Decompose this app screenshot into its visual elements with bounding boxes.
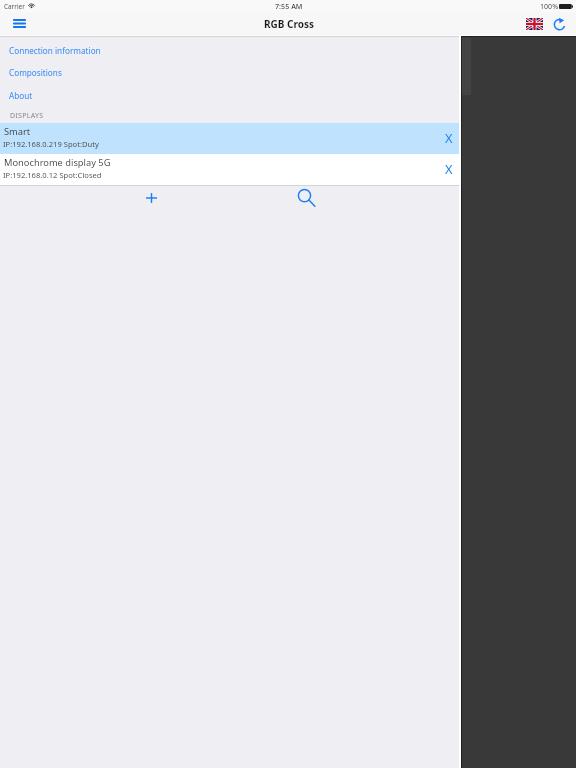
staticText: Smart	[4, 125, 31, 138]
staticText: Compositions	[9, 67, 62, 78]
button[interactable]: Connection information	[0, 39, 459, 61]
staticText: Monochrome display 5G	[4, 156, 111, 169]
button[interactable]: Smart	[0, 123, 459, 154]
staticText: X	[445, 160, 453, 177]
button[interactable]: Remove	[440, 159, 458, 177]
staticText: DISPLAYS	[10, 111, 44, 121]
staticText: About	[9, 90, 33, 101]
button[interactable]: Search	[293, 184, 319, 210]
staticText: Connection information	[9, 45, 101, 56]
staticText: IP:192.168.0.12 Spot:Closed	[3, 170, 102, 180]
staticText: 100%	[540, 1, 559, 11]
button[interactable]: Refresh	[548, 13, 571, 34]
button[interactable]: About	[0, 84, 459, 106]
button[interactable]: Add display	[138, 185, 164, 211]
button[interactable]: Language	[523, 14, 547, 33]
button[interactable]: Compositions	[0, 61, 459, 83]
staticText: 7:55 AM	[275, 1, 303, 11]
staticText: RGB Cross	[264, 17, 315, 31]
button[interactable]: Monochrome display 5G	[0, 154, 459, 185]
staticText: Carrier	[4, 2, 25, 11]
staticText: IP:192.168.0.219 Spot:Duty	[3, 139, 99, 149]
button[interactable]: Menu	[7, 11, 32, 36]
staticText: X	[445, 129, 453, 146]
button[interactable]: Remove	[440, 128, 458, 146]
